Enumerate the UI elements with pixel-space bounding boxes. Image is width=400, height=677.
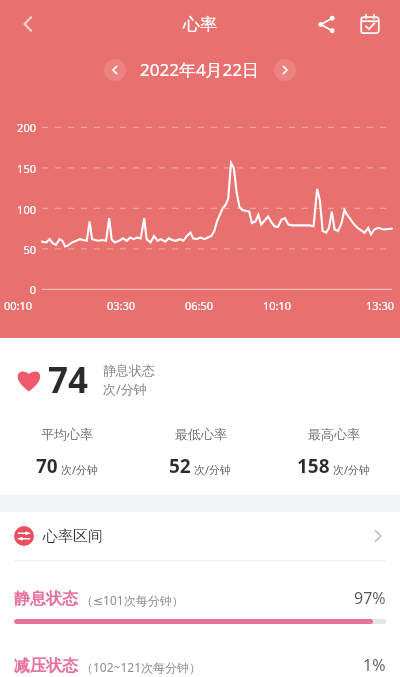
staticText: 74 [48,356,89,404]
staticText: 心率 [183,14,217,35]
staticText: 静息状态 [14,589,78,609]
staticText: 70 [36,453,58,479]
staticText: 静息状态 [103,362,155,378]
staticText: 心率区间 [43,527,103,546]
button[interactable]: 心率区间 [0,512,400,560]
staticText: 次/分钟 [61,462,99,477]
button[interactable]: 静息状态 [0,587,400,624]
staticText: 200 [4,120,36,135]
staticText: 次/分钟 [194,462,232,477]
staticText: 158 [297,453,330,479]
button[interactable]: 最高心率 [267,426,400,479]
staticText: 2022年4月22日 [140,58,260,81]
staticText: 03:30 [82,298,160,313]
staticText: 97% [354,587,386,609]
staticText: 06:50 [160,298,238,313]
staticText: 100 [4,202,36,217]
staticText: 减压状态 [14,656,78,676]
staticText: 平均心率 [41,426,93,442]
staticText: （102~121次每分钟） [81,659,202,675]
button[interactable]: Previous day [104,59,126,81]
button[interactable]: 最低心率 [134,426,267,479]
staticText: 150 [4,161,36,176]
staticText: 1% [363,654,386,676]
staticText: 次/分钟 [333,462,371,477]
staticText: 10:10 [238,298,316,313]
staticText: 52 [169,453,191,479]
staticText: 13:30 [316,298,394,313]
button[interactable]: 减压状态 [0,654,400,677]
button[interactable]: Calendar [348,2,392,46]
button[interactable]: Back [6,2,50,46]
button[interactable]: Next day [274,59,296,81]
staticText: 00:10 [4,298,82,313]
staticText: 最高心率 [308,426,360,442]
button[interactable]: 平均心率 [0,426,134,479]
staticText: 次/分钟 [103,380,147,398]
staticText: 0 [4,282,36,297]
staticText: 50 [4,242,36,257]
staticText: 最低心率 [175,426,227,442]
button[interactable]: Share [304,2,348,46]
staticText: （≤101次每分钟） [81,592,184,608]
